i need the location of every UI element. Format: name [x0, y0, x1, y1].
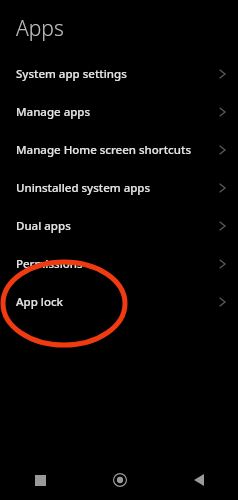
button[interactable]: Uninstalled system apps — [0, 169, 238, 207]
staticText: Manage Home screen shortcuts — [16, 142, 218, 158]
staticText: App lock — [16, 294, 218, 310]
button[interactable]: System app settings — [0, 55, 238, 93]
button[interactable]: Manage apps — [0, 93, 238, 131]
staticText: Permissions — [16, 256, 218, 272]
button[interactable]: Home — [80, 460, 159, 500]
staticText: Dual apps — [16, 218, 218, 234]
button[interactable]: Permissions — [0, 245, 238, 283]
staticText: Manage apps — [16, 104, 218, 120]
button[interactable]: Back — [159, 460, 238, 500]
button[interactable]: Dual apps — [0, 207, 238, 245]
staticText: System app settings — [16, 66, 218, 82]
button[interactable]: Recent apps — [0, 460, 80, 500]
staticText: Uninstalled system apps — [16, 180, 218, 196]
button[interactable]: Manage Home screen shortcuts — [0, 131, 238, 169]
staticText: Apps — [16, 14, 64, 43]
button[interactable]: App lock — [0, 283, 238, 321]
